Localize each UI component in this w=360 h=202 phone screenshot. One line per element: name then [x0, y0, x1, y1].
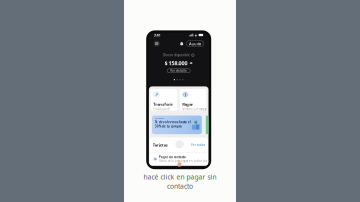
staticText: contacto [167, 182, 193, 191]
staticText: Transferir [153, 101, 173, 107]
staticText: 9:41 [154, 32, 161, 38]
button[interactable]: Pagar [180, 89, 206, 111]
button[interactable]: DESCUENTO [152, 115, 202, 134]
staticText: Ver detalle [170, 69, 187, 73]
staticText: enviá y pedí [153, 107, 170, 111]
button[interactable]: Ver todas [191, 143, 205, 147]
button[interactable]: Notificaciones [180, 41, 184, 46]
staticText: Usá tu celu para pagar en todos los come… [159, 159, 221, 163]
button[interactable]: Menú [154, 40, 160, 47]
staticText: Pagar [182, 101, 193, 107]
button[interactable]: Transferir [151, 89, 177, 111]
staticText: servicios y recargas [182, 107, 206, 111]
staticText: DESCUENTO [155, 117, 164, 119]
staticText: Ayuda [189, 41, 201, 46]
staticText: Tarjetas [153, 142, 168, 147]
staticText: $ 158.000 [165, 59, 188, 67]
button[interactable]: Ver detalle [167, 69, 190, 73]
button[interactable]: Pagar sin contacto [150, 152, 208, 166]
staticText: Te devolvemos hasta el [155, 120, 191, 124]
staticText: Ver todas [191, 143, 205, 147]
staticText: hacé click en pagar sin [143, 173, 216, 181]
staticText: Dinero disponible [163, 53, 190, 57]
staticText: 30% de tu compra [155, 125, 182, 128]
staticText: Pagar sin contacto [159, 155, 186, 159]
button[interactable]: Ayuda [186, 41, 204, 46]
